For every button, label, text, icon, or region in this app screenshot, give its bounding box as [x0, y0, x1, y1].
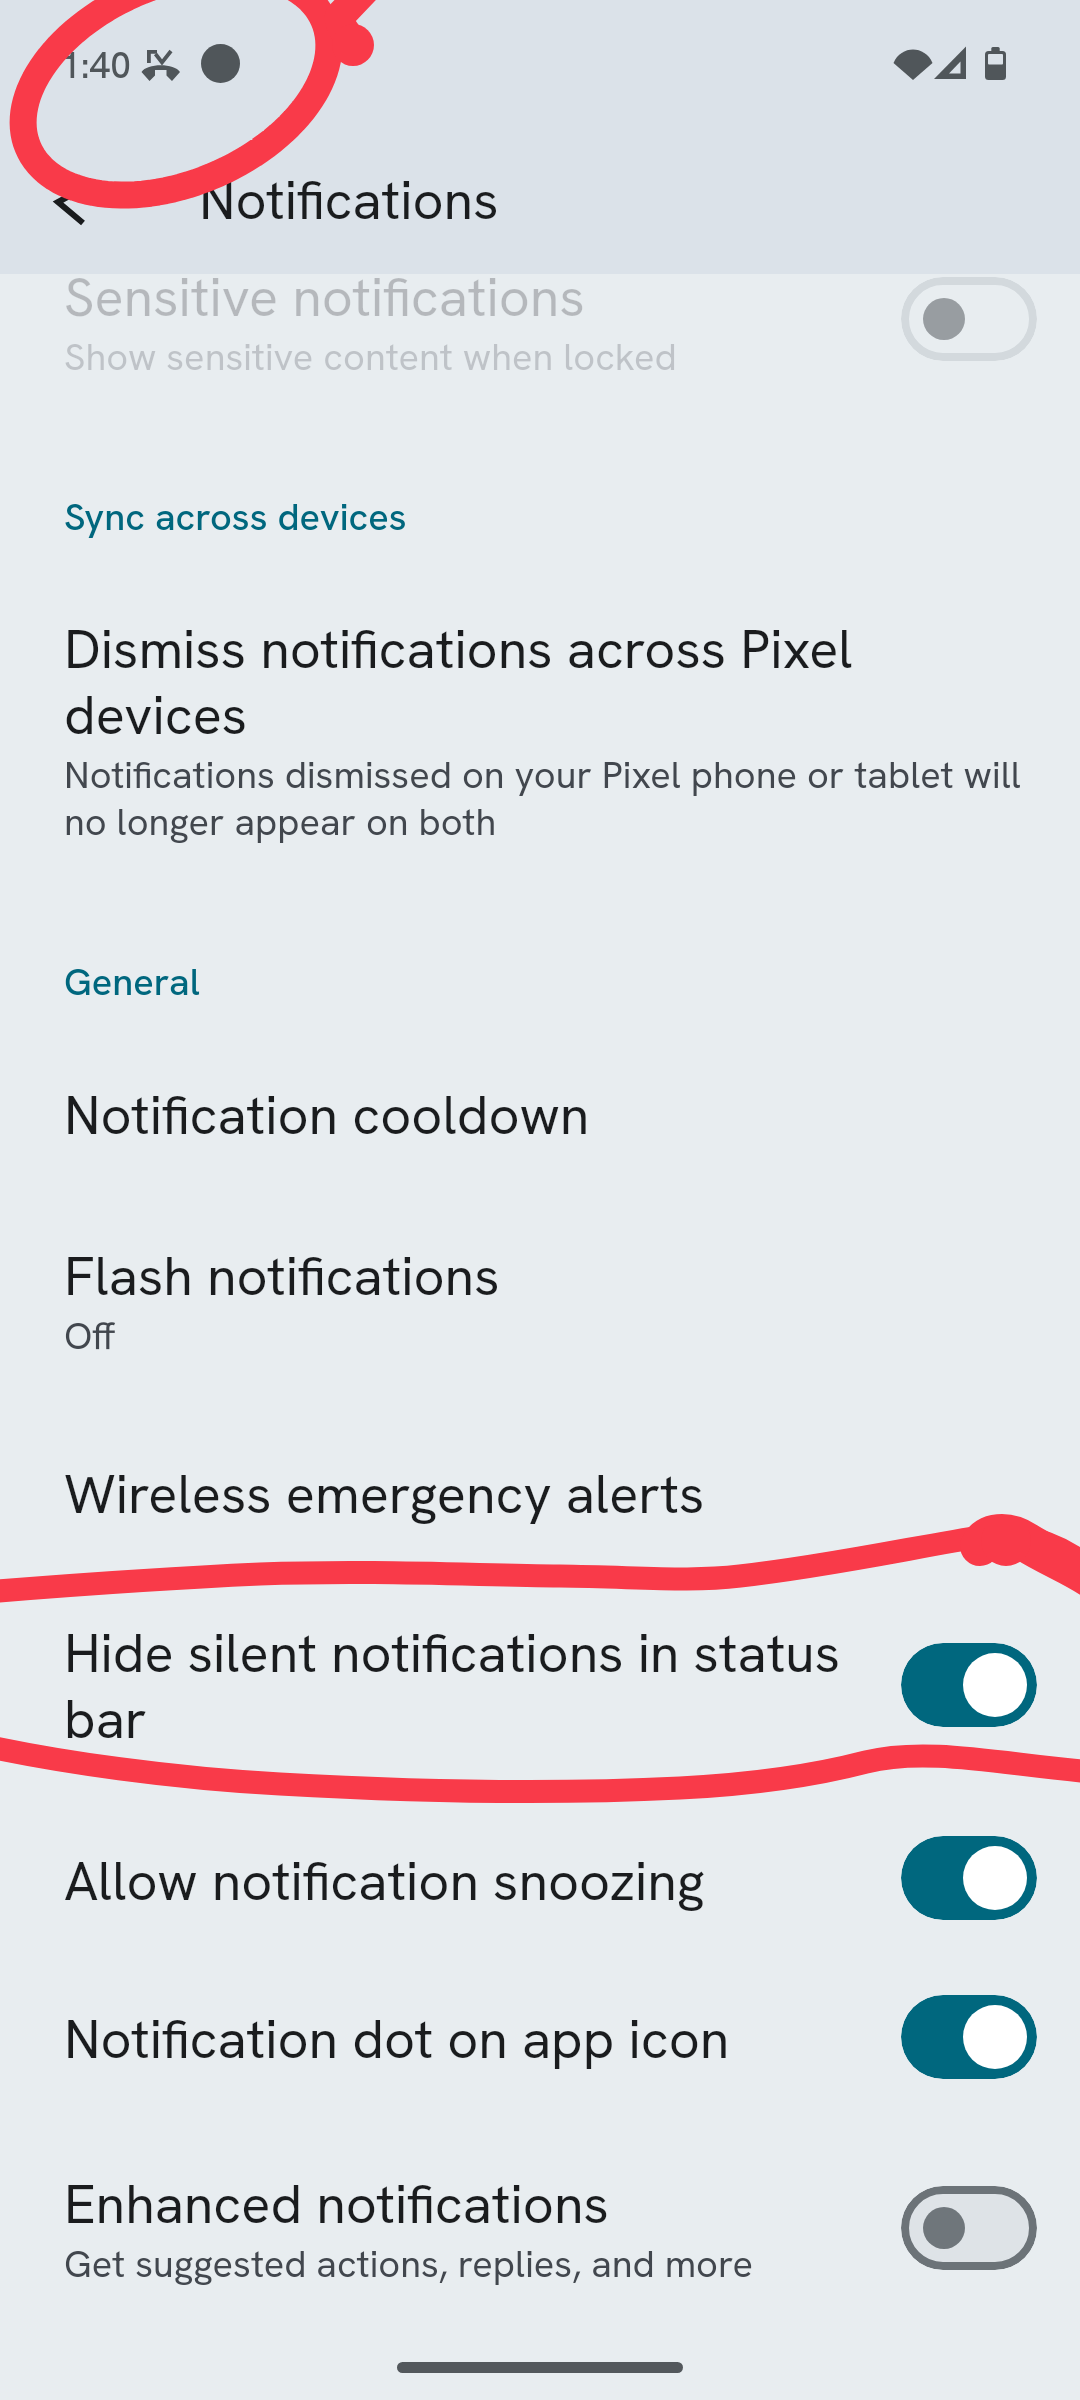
staticText: Notification dot on app icon — [64, 2004, 730, 2074]
button[interactable]: Enabled — [901, 1643, 1037, 1727]
button[interactable]: Enabled — [901, 1836, 1037, 1920]
staticText: Enhanced notifications — [64, 2169, 609, 2239]
staticText: Show sensitive content when locked — [64, 332, 677, 382]
staticText: 1:40 — [60, 41, 132, 89]
staticText: Wireless emergency alerts — [64, 1459, 705, 1529]
staticText: General — [64, 957, 200, 1007]
staticText: Flash notifications — [64, 1241, 500, 1311]
staticText: Sensitive notifications — [64, 262, 585, 332]
button[interactable]: Back — [31, 163, 115, 247]
button[interactable]: Allow notification snoozing — [0, 1846, 1080, 1966]
button[interactable]: Disabled — [901, 277, 1037, 361]
button[interactable]: Sensitive notifications — [0, 262, 1080, 462]
button[interactable]: Notification dot on app icon — [0, 2004, 1080, 2124]
button[interactable]: Enhanced notifications — [0, 2169, 1080, 2369]
staticText: Get suggested actions, replies, and more — [64, 2239, 753, 2289]
staticText: Sync across devices — [64, 492, 407, 542]
button[interactable]: Notification cooldown — [0, 1080, 1080, 1200]
staticText: Hide silent notifications in status bar — [64, 1618, 864, 1754]
button[interactable]: Flash notifications — [0, 1241, 1080, 1441]
button[interactable]: Wireless emergency alerts — [0, 1459, 1080, 1579]
staticText: Notifications — [199, 165, 499, 235]
button[interactable]: Disabled — [901, 2186, 1037, 2270]
staticText: Notifications dismissed on your Pixel ph… — [64, 750, 1044, 847]
button[interactable]: Hide silent notifications in status bar — [0, 1618, 1080, 1738]
staticText: Notification cooldown — [64, 1080, 590, 1150]
button[interactable]: Dismiss notifications across Pixel devic… — [0, 614, 1080, 814]
button[interactable]: Enabled — [901, 1995, 1037, 2079]
staticText: Allow notification snoozing — [64, 1846, 705, 1916]
staticText: Off — [64, 1311, 116, 1361]
staticText: Dismiss notifications across Pixel devic… — [64, 614, 1044, 750]
